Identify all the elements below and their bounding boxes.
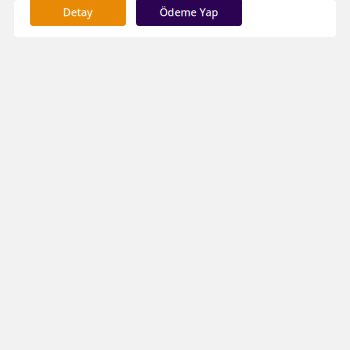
button[interactable]: Detay [30, 0, 126, 26]
staticText: Ödeme Yap [159, 5, 218, 19]
staticText: Detay [63, 5, 93, 19]
button[interactable]: Ödeme Yap [136, 0, 242, 26]
